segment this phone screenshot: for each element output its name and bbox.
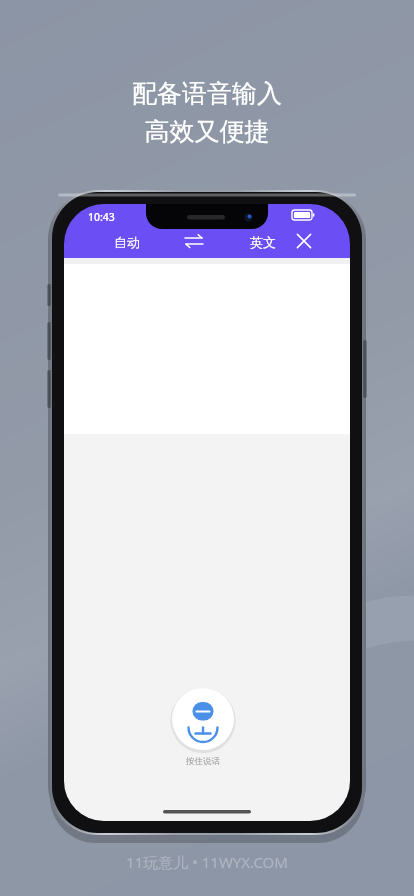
staticText: 英文	[250, 234, 276, 250]
staticText: 配备语音输入 高效又便捷	[132, 78, 282, 148]
button[interactable]: 自动	[104, 231, 150, 253]
staticText: 自动	[114, 234, 140, 250]
button[interactable]: Swap languages	[178, 230, 210, 254]
staticText: 11玩意儿 • 11WYX.COM	[126, 852, 288, 872]
button[interactable]: 英文	[240, 231, 286, 253]
staticText: 按住说话	[186, 756, 220, 767]
button[interactable]: Hold to speak	[172, 688, 234, 750]
button[interactable]: Close	[290, 228, 318, 256]
staticText: 10:43	[88, 210, 115, 224]
